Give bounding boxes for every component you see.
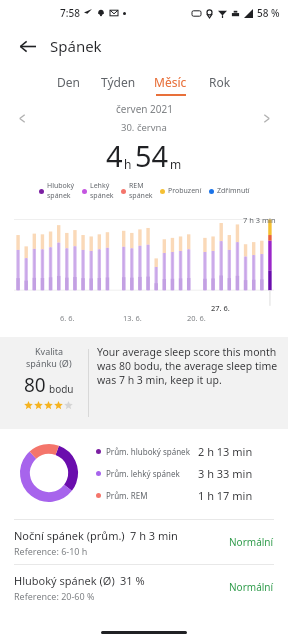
staticText: 31 %	[120, 573, 145, 588]
staticText: Your average sleep score this month was …	[97, 345, 278, 387]
button[interactable]: Rok	[196, 74, 244, 96]
staticText: Reference: 20-60 %	[14, 590, 95, 602]
staticText: Spánek	[50, 36, 102, 56]
staticText: Hluboký spánek (Ø)	[14, 573, 115, 588]
staticText: 2 h 13 min	[198, 444, 253, 459]
staticText: červen 2021	[116, 102, 173, 116]
staticText: 4	[106, 136, 123, 175]
staticText: Lehký	[90, 181, 110, 191]
staticText: Prům. REM	[106, 490, 148, 501]
staticText: Den	[57, 74, 80, 90]
button[interactable]: Den	[44, 74, 92, 96]
staticText: Prům. hluboký spánek	[106, 446, 190, 457]
staticText: Prům. lehký spánek	[106, 468, 180, 479]
staticText: Rok	[209, 74, 231, 90]
button[interactable]: Noční spánek (prům.)	[0, 520, 288, 564]
staticText: Týden	[101, 74, 136, 90]
button[interactable]: Back	[12, 31, 42, 61]
staticText: 3 h 33 min	[198, 466, 253, 481]
staticText: h	[124, 156, 132, 172]
button[interactable]: Týden	[92, 74, 145, 96]
staticText: Noční spánek (prům.)	[14, 528, 125, 543]
staticText: 7:58	[60, 6, 80, 20]
staticText: 58 %	[257, 6, 280, 20]
staticText: 13. 6.	[123, 313, 142, 323]
staticText: 30. června	[121, 121, 167, 134]
button[interactable]: Next month	[254, 106, 278, 130]
staticText: m	[170, 156, 182, 172]
staticText: spánek	[47, 191, 71, 201]
staticText: Kvalita	[35, 345, 64, 357]
staticText: 1 h 17 min	[198, 488, 253, 503]
staticText: Probuzení	[168, 186, 202, 196]
staticText: Hluboký	[47, 181, 75, 191]
button[interactable]: Hluboký spánek (Ø)	[0, 565, 288, 609]
staticText: 7 h 3 min	[243, 215, 276, 225]
staticText: 6. 6.	[60, 313, 75, 323]
staticText: spánek	[129, 191, 153, 201]
staticText: 80	[24, 372, 46, 398]
staticText: spánku (Ø)	[26, 357, 72, 369]
button[interactable]: Previous month	[10, 106, 34, 130]
staticText: Normální	[229, 580, 274, 594]
staticText: 20. 6.	[187, 313, 206, 323]
staticText: Zdřímnutí	[217, 186, 250, 196]
button[interactable]: Měsíc	[145, 74, 196, 96]
staticText: 54	[135, 136, 169, 175]
staticText: REM	[129, 181, 144, 191]
staticText: Měsíc	[154, 74, 187, 90]
staticText: 27. 6.	[211, 303, 230, 313]
staticText: spánek	[90, 191, 114, 201]
staticText: bodu	[49, 382, 74, 396]
staticText: Reference: 6-10 h	[14, 545, 88, 557]
staticText: Normální	[229, 535, 274, 549]
staticText: 7 h 3 min	[130, 528, 178, 543]
